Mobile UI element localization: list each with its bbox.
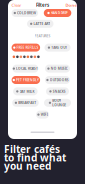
button[interactable]: BODY LOUNGE <box>44 99 71 107</box>
staticText: OAT MILK <box>19 89 34 94</box>
staticText: Filters <box>36 2 49 8</box>
staticText: PET FRIENDLY <box>16 78 39 82</box>
staticText: TAKE OUT <box>51 45 67 50</box>
button[interactable]: Clear <box>12 2 22 8</box>
staticText: Done <box>65 2 76 8</box>
staticText: LATTE ART <box>33 22 50 26</box>
button[interactable]: Done <box>65 2 76 8</box>
button[interactable]: LOCAL ROAST <box>12 65 38 73</box>
staticText: FEATURES <box>34 34 50 38</box>
button[interactable]: TAKE OUT <box>44 44 70 52</box>
staticText: WIFI <box>41 112 48 117</box>
staticText: LOCAL ROAST <box>16 66 38 71</box>
staticText: Clear <box>12 2 22 8</box>
staticText: BREAKFAST <box>18 101 36 105</box>
staticText: OUTDOORS <box>50 78 69 82</box>
button[interactable]: PET FRIENDLY <box>12 76 40 84</box>
staticText: SNACKS <box>53 89 66 94</box>
staticText: Filter cafés <box>4 142 60 156</box>
button[interactable]: WIFI <box>36 111 49 119</box>
staticText: COLD BREW <box>17 11 36 15</box>
button[interactable]: SNACKS <box>46 87 69 95</box>
button[interactable]: FREE REFILLS <box>12 44 40 52</box>
button[interactable]: LATTE ART <box>27 20 53 28</box>
staticText: NO MUSIC <box>51 66 68 71</box>
staticText: FREE REFILLS <box>16 45 38 50</box>
button[interactable]: OUTDOORS <box>45 76 70 84</box>
button[interactable]: NO MUSIC <box>45 65 70 73</box>
button[interactable]: OAT MILK <box>13 87 38 95</box>
staticText: HAND DRIP <box>51 11 68 15</box>
staticText: to find what <box>4 150 66 164</box>
button[interactable]: BREAKFAST <box>12 99 39 107</box>
staticText: you need <box>4 159 51 173</box>
button[interactable]: HAND DRIP <box>44 9 71 17</box>
staticText: BODY LOUNGE <box>52 98 66 107</box>
button[interactable]: COLD BREW <box>12 9 38 17</box>
